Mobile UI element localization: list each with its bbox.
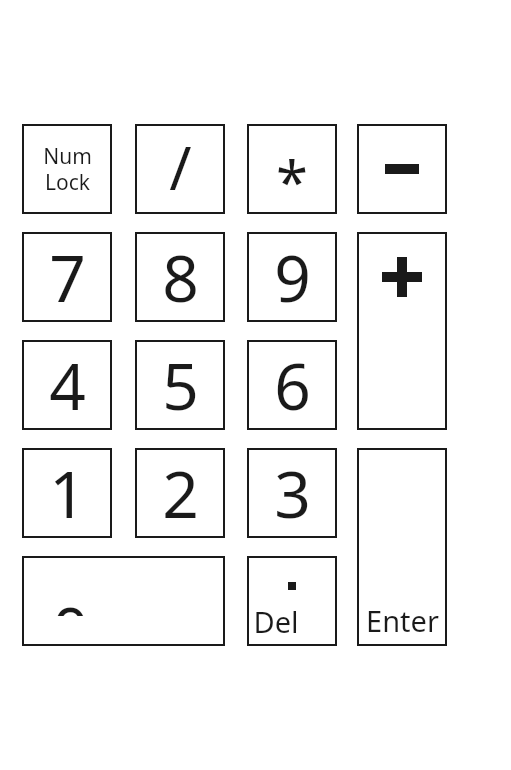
button[interactable]: Three: [247, 448, 337, 538]
staticText: 5: [162, 342, 199, 429]
staticText: 4: [49, 342, 86, 429]
staticText: 0: [52, 586, 89, 616]
button[interactable]: One: [22, 448, 112, 538]
button[interactable]: Seven: [22, 232, 112, 322]
button[interactable]: Two: [135, 448, 225, 538]
button[interactable]: Multiply: [247, 124, 337, 214]
button[interactable]: Enter: [357, 448, 447, 646]
button[interactable]: Eight: [135, 232, 225, 322]
staticText: *: [276, 142, 308, 221]
staticText: 3: [274, 450, 311, 537]
button[interactable]: Decimal point, Delete: [247, 556, 337, 646]
staticText: 7: [49, 234, 86, 321]
staticText: Enter: [366, 601, 439, 640]
button[interactable]: Four: [22, 340, 112, 430]
button[interactable]: Five: [135, 340, 225, 430]
staticText: /: [169, 126, 192, 208]
button[interactable]: Nine: [247, 232, 337, 322]
staticText: Num Lock: [43, 142, 92, 197]
button[interactable]: Num Lock: [22, 124, 112, 214]
staticText: Del: [253, 602, 299, 641]
staticText: 1: [49, 450, 86, 537]
button[interactable]: Minus: [357, 124, 447, 214]
button[interactable]: Divide: [135, 124, 225, 214]
staticText: 6: [274, 342, 311, 429]
staticText: 2: [162, 450, 199, 537]
staticText: 9: [274, 234, 311, 321]
button[interactable]: Zero: [22, 556, 225, 646]
staticText: 8: [162, 234, 199, 321]
button[interactable]: Plus: [357, 232, 447, 430]
button[interactable]: Six: [247, 340, 337, 430]
